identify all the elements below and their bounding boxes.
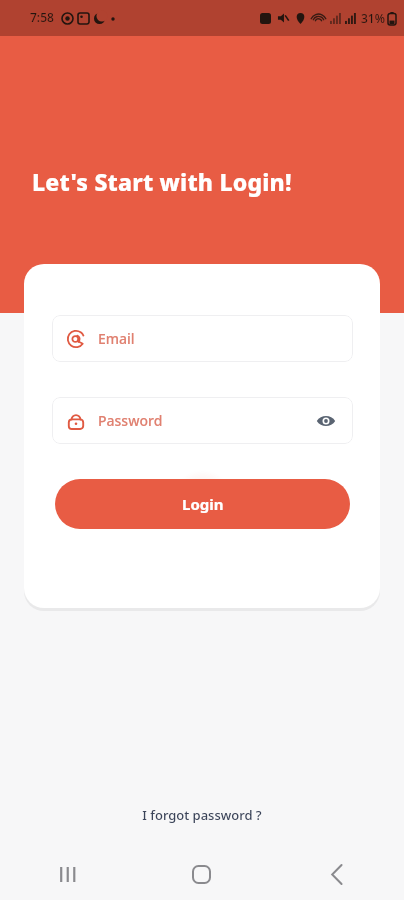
button[interactable]: Back [269,848,404,900]
button[interactable]: I forgot password ? [126,800,278,830]
button[interactable]: Show password [313,408,339,434]
staticText: Password [98,411,163,430]
staticText: Let's Start with Login! [32,166,292,197]
button[interactable]: Email [52,315,353,362]
staticText: 31% [361,10,385,26]
staticText: I forgot password ? [142,806,262,824]
button[interactable]: Login [55,479,350,529]
button[interactable]: Recent apps [0,848,134,900]
staticText: Login [182,494,224,514]
button[interactable]: Home [134,848,269,900]
staticText: Email [98,329,135,348]
button[interactable]: Password [52,397,353,444]
staticText: 7:58 [30,9,54,25]
